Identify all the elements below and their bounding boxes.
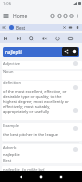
- staticText: Best: [16, 25, 26, 31]
- button[interactable]: Navigate back: [49, 12, 56, 20]
- button[interactable]: Back: [16, 172, 26, 182]
- button[interactable]: Search: [27, 34, 36, 43]
- button[interactable]: Listen: [72, 125, 79, 132]
- button[interactable]: More options: [75, 12, 80, 20]
- staticText: Home: [13, 13, 28, 20]
- button[interactable]: Translate: [67, 24, 74, 31]
- staticText: najlepšie, čo môže byť: [3, 167, 45, 172]
- button[interactable]: Next: [14, 34, 23, 43]
- button[interactable]: Refresh: [53, 34, 62, 43]
- button[interactable]: Listen: [72, 60, 79, 67]
- button[interactable]: Web search: [70, 47, 78, 55]
- button[interactable]: Share: [62, 47, 70, 55]
- staticText: najlepší: [5, 49, 22, 55]
- staticText: Adjective: [3, 61, 20, 66]
- staticText: Best: [3, 158, 12, 163]
- button[interactable]: Tabs: [68, 12, 75, 20]
- button[interactable]: Clear: [61, 24, 68, 31]
- staticText: of the most excellent, effective, or des…: [3, 89, 71, 114]
- button[interactable]: najlepší: [3, 47, 79, 57]
- button[interactable]: Listen: [72, 84, 79, 91]
- button[interactable]: Desktop site: [66, 34, 75, 43]
- staticText: najlepšie: [3, 152, 20, 157]
- button[interactable]: Listen: [72, 146, 79, 153]
- button[interactable]: Previous: [1, 34, 10, 43]
- button[interactable]: Menu: [2, 12, 10, 20]
- staticText: definition: [3, 80, 21, 85]
- staticText: Adverb: [3, 145, 17, 150]
- button[interactable]: Voice search: [75, 24, 80, 31]
- button[interactable]: Mute: [40, 34, 49, 43]
- button[interactable]: Home: [36, 172, 46, 182]
- button[interactable]: Back: [1, 24, 8, 31]
- staticText: Noun: [3, 69, 14, 74]
- staticText: the best pitcher in the league: [3, 132, 59, 137]
- button[interactable]: Recent apps: [56, 172, 66, 182]
- staticText: 1:06: [3, 1, 11, 6]
- button[interactable]: Bookmarks: [62, 12, 69, 20]
- button[interactable]: Navigate forward: [56, 12, 63, 20]
- button[interactable]: Listen: [72, 107, 79, 114]
- staticText: Example: [3, 123, 20, 128]
